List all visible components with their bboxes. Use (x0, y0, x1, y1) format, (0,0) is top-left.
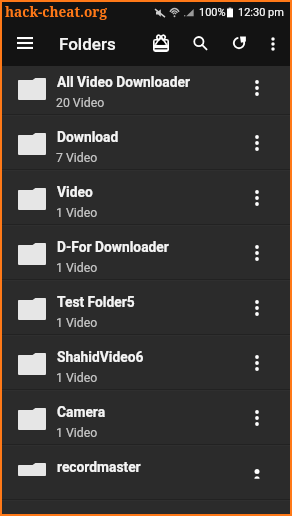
button[interactable]: More options (238, 69, 276, 107)
staticText: hack-cheat.org (5, 2, 107, 21)
staticText: Test Folder5 (57, 294, 135, 310)
button[interactable]: More options (259, 30, 287, 58)
staticText: recordmaster (57, 459, 141, 475)
button[interactable]: ShahidVideo6 (2, 336, 290, 389)
staticText: ShahidVideo6 (57, 349, 144, 365)
button[interactable]: Video (2, 171, 290, 224)
staticText: 1 Video (56, 426, 98, 440)
button[interactable]: Test Folder5 (2, 281, 290, 334)
staticText: D-For Downloader (57, 239, 169, 255)
staticText: 12:30 pm (238, 6, 284, 19)
staticText: 100% (199, 6, 226, 19)
button[interactable]: Camera (2, 391, 290, 444)
button[interactable]: Menu (9, 28, 41, 60)
staticText: 7 Video (56, 151, 98, 165)
staticText: 1 Video (56, 371, 98, 385)
staticText: 1 Video (56, 261, 98, 275)
staticText: Folders (59, 34, 116, 54)
button[interactable]: Search (184, 27, 216, 59)
button[interactable]: Download (2, 116, 290, 169)
button[interactable]: recordmaster (2, 446, 290, 499)
button[interactable]: More options (238, 454, 276, 492)
button[interactable]: All Video Downloader (2, 61, 290, 114)
button[interactable]: D-For Downloader (2, 226, 290, 279)
staticText: 20 Video (56, 96, 105, 110)
staticText: Download (57, 129, 119, 145)
button[interactable]: More options (238, 234, 276, 272)
button[interactable]: More options (238, 344, 276, 382)
button[interactable]: More options (238, 179, 276, 217)
button[interactable]: More options (238, 399, 276, 437)
button[interactable]: Refresh (223, 27, 255, 59)
staticText: Camera (57, 404, 106, 420)
staticText: Video (57, 184, 93, 200)
staticText: All Video Downloader (57, 74, 190, 90)
staticText: 1 Video (56, 316, 98, 330)
button[interactable]: More options (238, 124, 276, 162)
button[interactable]: Gift (145, 27, 177, 59)
staticText: 1 Video (56, 206, 98, 220)
button[interactable]: More options (238, 289, 276, 327)
